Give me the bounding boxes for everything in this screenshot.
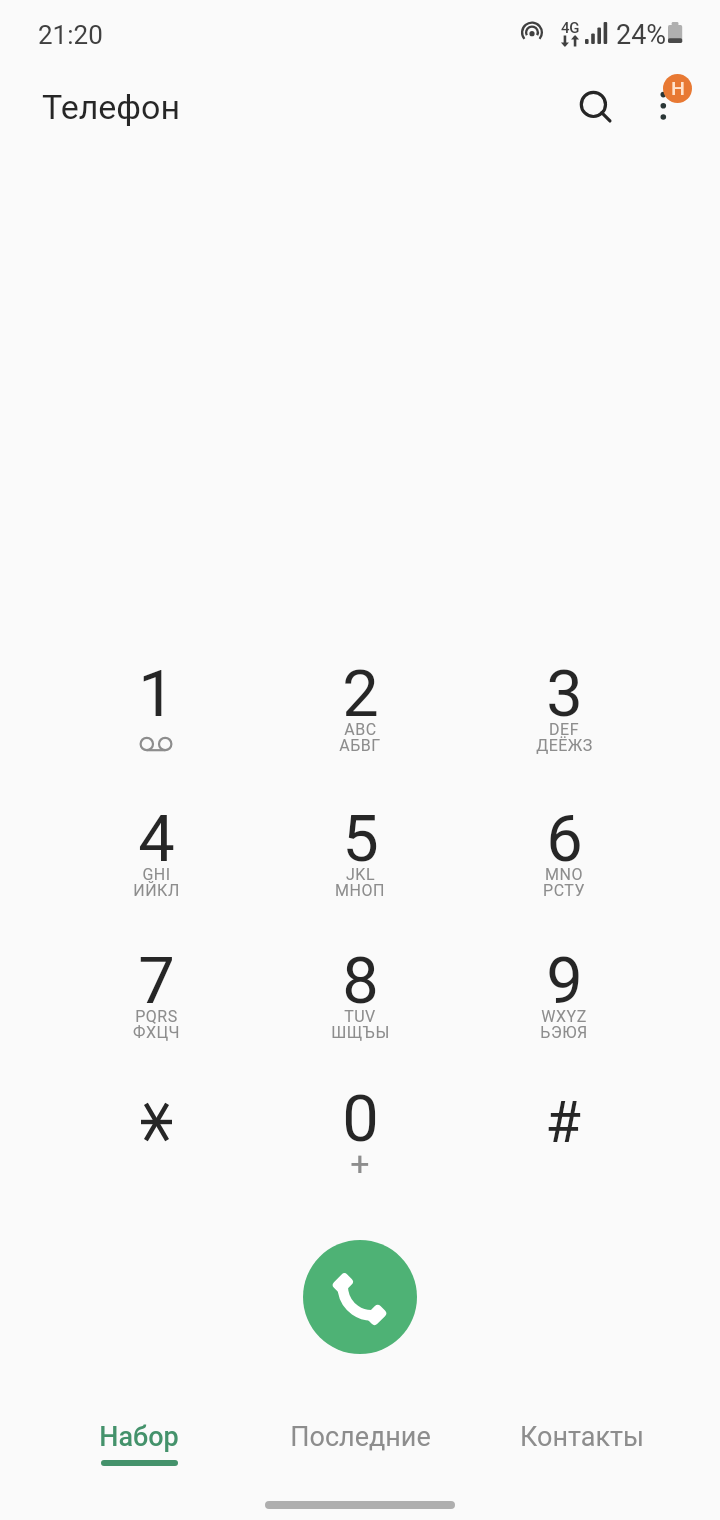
staticText: 4	[138, 801, 175, 877]
staticText: 4G	[561, 19, 579, 37]
staticText: H	[671, 77, 685, 99]
button[interactable]: Call	[303, 1240, 417, 1354]
staticText: PQRS	[135, 1007, 178, 1026]
staticText: ШЩЪЫ	[331, 1023, 390, 1042]
button[interactable]: Search	[568, 79, 624, 135]
staticText: MNO	[545, 865, 583, 884]
staticText: 0	[342, 1081, 379, 1157]
button[interactable]: Digit 2	[275, 640, 445, 760]
staticText: Последние	[290, 1421, 431, 1453]
button[interactable]: Digit 9	[479, 927, 649, 1047]
staticText: 6	[546, 801, 583, 877]
button[interactable]: Star	[71, 1070, 241, 1190]
staticText: +	[350, 1143, 370, 1183]
staticText: АБВГ	[339, 736, 381, 755]
staticText: ЬЭЮЯ	[540, 1023, 588, 1042]
button[interactable]: Последние	[250, 1412, 470, 1492]
staticText: 8	[342, 943, 379, 1019]
button[interactable]: Hash	[479, 1070, 649, 1190]
staticText: 5	[342, 801, 379, 877]
staticText: МНОП	[335, 881, 385, 900]
staticText: 1	[138, 656, 175, 732]
staticText: 21:20	[38, 20, 103, 50]
staticText: Набор	[99, 1421, 179, 1453]
button[interactable]: Digit 3	[479, 640, 649, 760]
staticText: ФХЦЧ	[133, 1023, 180, 1042]
staticText: #	[545, 1088, 581, 1156]
staticText: ДЕЁЖЗ	[536, 736, 593, 755]
button[interactable]: Контакты	[470, 1412, 700, 1492]
button[interactable]: Digit 1	[71, 640, 241, 760]
button[interactable]: More options	[635, 76, 692, 133]
staticText: Контакты	[520, 1421, 644, 1453]
button[interactable]: Digit 6	[479, 785, 649, 905]
staticText: DEF	[549, 720, 579, 739]
button[interactable]: Digit 8	[275, 927, 445, 1047]
staticText: WXYZ	[541, 1007, 587, 1026]
staticText: РСТУ	[543, 881, 585, 900]
button[interactable]: Digit 5	[275, 785, 445, 905]
staticText: 7	[138, 943, 175, 1019]
staticText: 3	[546, 656, 583, 732]
button[interactable]: Digit 0	[275, 1070, 445, 1190]
staticText: GHI	[142, 865, 171, 884]
staticText: ABC	[344, 720, 377, 739]
button[interactable]: Набор	[20, 1412, 250, 1492]
staticText: ИЙКЛ	[133, 881, 180, 900]
staticText: 9	[546, 943, 583, 1019]
button[interactable]: Digit 7	[71, 927, 241, 1047]
staticText: 2	[342, 656, 379, 732]
staticText: 24%	[616, 19, 667, 51]
staticText: JKL	[346, 865, 375, 884]
button[interactable]: Digit 4	[71, 785, 241, 905]
staticText: TUV	[344, 1007, 376, 1026]
staticText: Телефон	[42, 87, 181, 127]
